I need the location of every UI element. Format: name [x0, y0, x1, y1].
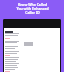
staticText: Know Who Called You with Enhanced Caller… — [16, 2, 49, 14]
